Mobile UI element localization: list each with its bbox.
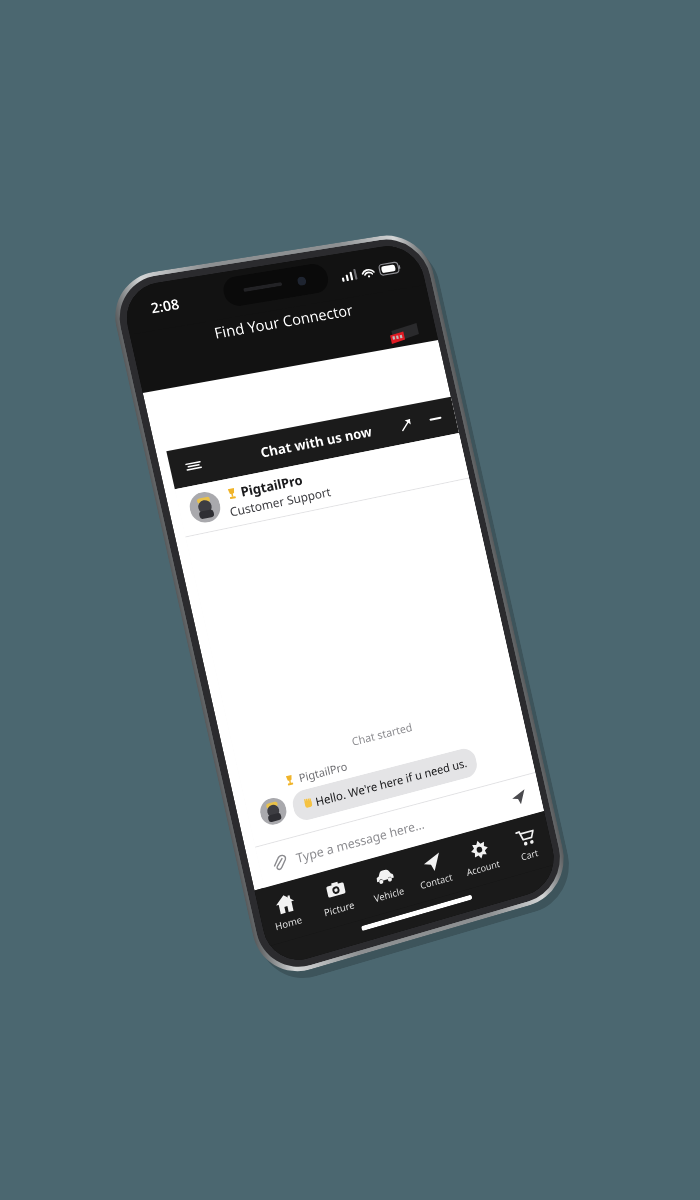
staticText: 2:08	[149, 294, 181, 317]
staticText: Chat started	[350, 719, 414, 749]
button[interactable]: Account	[452, 823, 510, 890]
button[interactable]: Attach file	[269, 851, 290, 874]
button[interactable]: Send	[507, 784, 531, 811]
button[interactable]: Vehicle	[356, 849, 416, 918]
staticText: PigtailPro	[239, 470, 305, 501]
staticText: Contact	[419, 870, 454, 892]
staticText: Customer Support	[228, 483, 332, 519]
staticText: Type a message here...	[294, 815, 426, 867]
staticText: Find Your Connector	[212, 299, 355, 343]
button[interactable]: Home	[254, 876, 318, 947]
button[interactable]: Attach file	[255, 773, 544, 888]
staticText: Cart	[520, 846, 540, 863]
button[interactable]: Picture	[306, 863, 368, 932]
staticText: Home	[274, 913, 304, 933]
button[interactable]: Expand chat	[394, 413, 417, 436]
button[interactable]: Menu	[180, 453, 207, 479]
button[interactable]: Contact	[404, 836, 464, 904]
button[interactable]: Cart	[498, 811, 556, 877]
staticText: Picture	[323, 898, 356, 919]
staticText: Account	[465, 857, 502, 879]
staticText: PigtailPro	[297, 758, 349, 785]
button[interactable]: Product	[385, 320, 423, 347]
button[interactable]: Minimize chat	[424, 407, 446, 430]
staticText: Chat with us now	[259, 422, 374, 462]
staticText: Hello. We're here if u need us.	[314, 755, 469, 810]
staticText: Vehicle	[373, 884, 406, 905]
button[interactable]: PigtailPro	[186, 439, 468, 527]
